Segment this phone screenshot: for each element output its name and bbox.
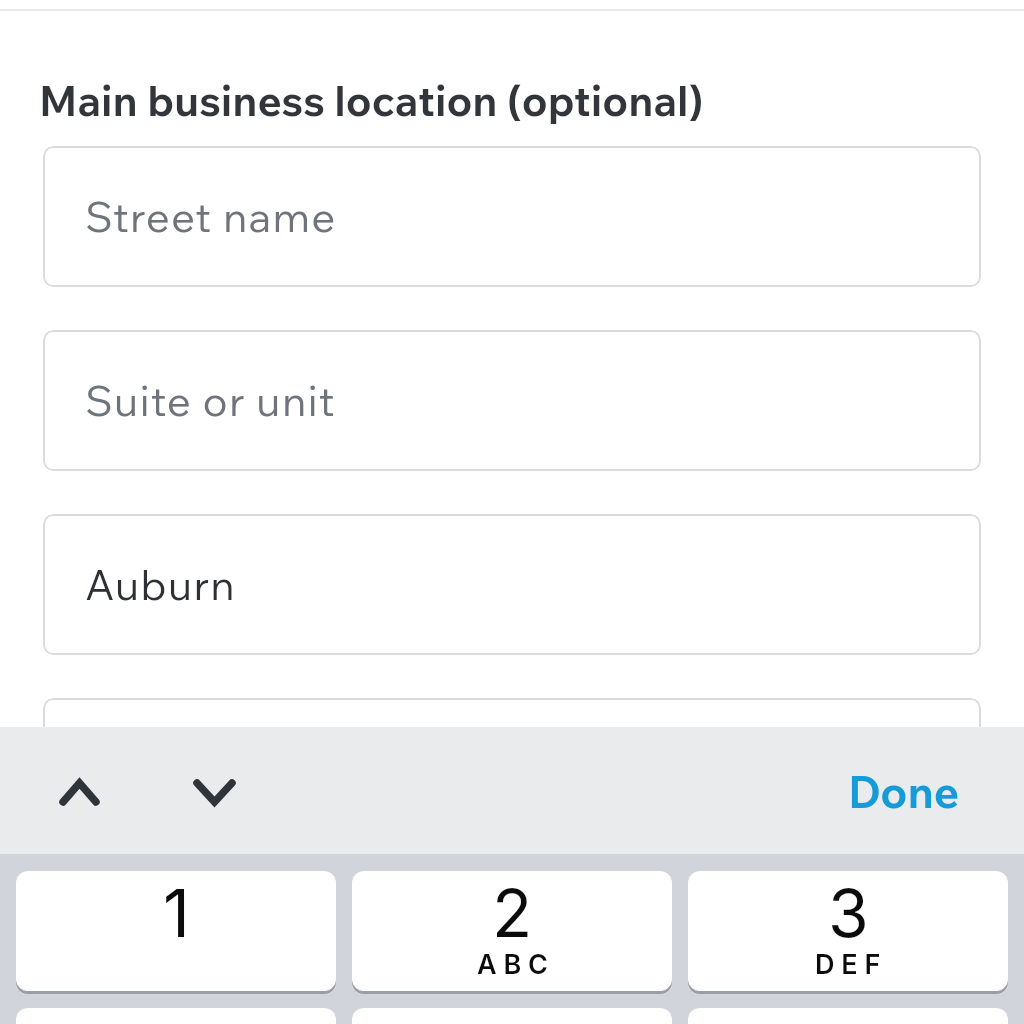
- button[interactable]: [40, 761, 118, 823]
- staticText: Done: [848, 764, 960, 819]
- button[interactable]: [174, 761, 254, 823]
- button[interactable]: Suite or unit: [43, 330, 981, 471]
- button[interactable]: [43, 698, 981, 839]
- staticText: Street name: [85, 190, 337, 243]
- staticText: Auburn: [85, 558, 236, 611]
- staticText: A B C: [477, 948, 548, 981]
- staticText: 1: [163, 873, 190, 953]
- staticText: Suite or unit: [85, 374, 336, 427]
- staticText: D E F: [815, 948, 881, 981]
- staticText: Main business location (optional): [39, 74, 704, 127]
- button[interactable]: Done: [848, 764, 960, 819]
- button[interactable]: 1: [16, 871, 336, 991]
- button[interactable]: Street name: [43, 146, 981, 287]
- staticText: 3: [828, 873, 869, 953]
- staticText: 2: [492, 873, 533, 953]
- button[interactable]: 2: [352, 871, 672, 991]
- button[interactable]: 3: [688, 871, 1008, 991]
- button[interactable]: Auburn: [43, 514, 981, 655]
